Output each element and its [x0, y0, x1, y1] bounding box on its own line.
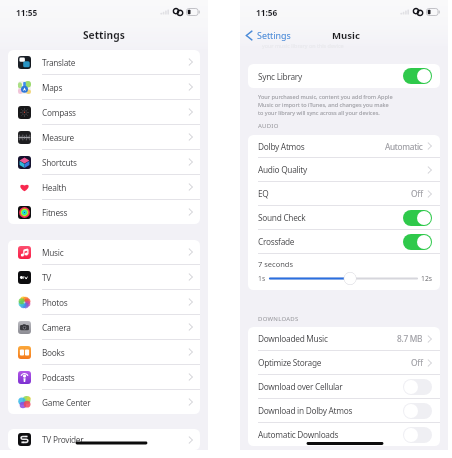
staticText: Music	[332, 29, 360, 42]
button[interactable]: Dolby Atmos	[248, 135, 440, 158]
staticText: TV	[42, 272, 52, 283]
button[interactable]: Camera	[8, 315, 200, 340]
staticText: Compass	[42, 107, 76, 118]
button[interactable]: Sound Check	[248, 206, 440, 230]
button[interactable]: Back to Settings	[243, 28, 293, 42]
button[interactable]: Translate	[8, 50, 200, 75]
staticText: Camera	[42, 322, 71, 333]
button[interactable]: Toggle on	[403, 68, 432, 84]
staticText: Books	[42, 347, 65, 358]
button[interactable]: Download in Dolby Atmos	[248, 399, 440, 423]
staticText: TV Provider	[42, 434, 84, 445]
staticText: 7 seconds	[258, 259, 294, 269]
staticText: Measure	[42, 132, 74, 143]
button[interactable]: Health	[8, 175, 200, 200]
button[interactable]: Maps	[8, 75, 200, 100]
staticText: Settings	[83, 28, 125, 42]
staticText: Download in Dolby Atmos	[258, 405, 353, 416]
staticText: 11:55	[16, 7, 38, 18]
staticText: Optimize Storage	[258, 357, 322, 368]
staticText: Sound Check	[258, 212, 306, 223]
button[interactable]: TV	[8, 265, 200, 290]
staticText: Photos	[42, 297, 68, 308]
staticText: Audio Quality	[258, 164, 307, 175]
button[interactable]: Crossfade	[248, 230, 440, 254]
button[interactable]: Toggle off	[403, 403, 432, 419]
button[interactable]: EQ	[248, 182, 440, 206]
staticText: your music library on this device	[262, 42, 344, 49]
staticText: 11:56	[256, 7, 278, 18]
button[interactable]: Shortcuts	[8, 150, 200, 175]
button[interactable]: Books	[8, 340, 200, 365]
staticText: Shortcuts	[42, 157, 77, 168]
staticText: Automatic Downloads	[258, 429, 339, 440]
staticText: Translate	[42, 57, 76, 68]
staticText: 8.7 MB	[397, 333, 423, 344]
staticText: Sync Library	[258, 71, 302, 82]
staticText: 12s	[421, 274, 433, 283]
staticText: Dolby Atmos	[258, 141, 305, 152]
button[interactable]: Podcasts	[8, 365, 200, 390]
button[interactable]: Download over Cellular	[248, 375, 440, 399]
staticText: Download over Cellular	[258, 381, 343, 392]
staticText: Music	[42, 247, 64, 258]
staticText: Automatic	[385, 141, 423, 152]
button[interactable]: Measure	[8, 125, 200, 150]
button[interactable]: Fitness	[8, 200, 200, 224]
button[interactable]: Optimize Storage	[248, 351, 440, 375]
staticText: Fitness	[42, 207, 68, 218]
button[interactable]: Photos	[8, 290, 200, 315]
staticText: Downloaded Music	[258, 333, 328, 344]
staticText: 1s	[258, 274, 266, 283]
button[interactable]: Compass	[8, 100, 200, 125]
button[interactable]: TV Provider	[8, 429, 200, 450]
staticText: Maps	[42, 82, 63, 93]
staticText: Health	[42, 182, 67, 193]
button[interactable]: Toggle off	[403, 427, 432, 443]
button[interactable]: Music	[8, 240, 200, 265]
button[interactable]: Game Center	[8, 390, 200, 414]
button[interactable]: Audio Quality	[248, 158, 440, 182]
button[interactable]: Toggle off	[403, 379, 432, 395]
staticText: Your purchased music, content you add fr…	[258, 93, 394, 117]
button[interactable]: Toggle on	[403, 234, 432, 250]
staticText: AUDIO	[258, 122, 279, 130]
staticText: EQ	[258, 188, 269, 199]
button[interactable]: Sync Library	[248, 64, 440, 88]
staticText: Settings	[257, 29, 291, 41]
staticText: Off	[411, 357, 423, 368]
staticText: Podcasts	[42, 372, 75, 383]
staticText: Game Center	[42, 397, 91, 408]
staticText: DOWNLOADS	[258, 315, 299, 323]
button[interactable]: Automatic Downloads	[248, 423, 440, 446]
button[interactable]: Downloaded Music	[248, 327, 440, 351]
button[interactable]: Toggle on	[403, 210, 432, 226]
staticText: Crossfade	[258, 236, 295, 247]
staticText: Off	[411, 188, 423, 199]
